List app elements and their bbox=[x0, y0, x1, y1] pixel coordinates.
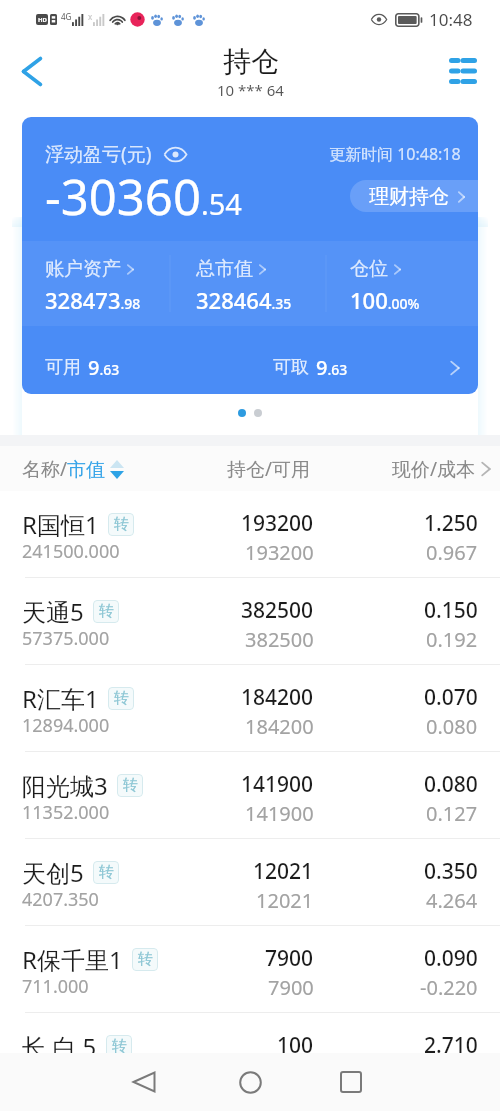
staticText: 10 *** 64 bbox=[217, 80, 284, 100]
button[interactable]: R汇车1 bbox=[0, 665, 500, 752]
staticText: 可取 bbox=[273, 356, 309, 379]
staticText: 阳光城3 bbox=[22, 769, 108, 802]
staticText: HD bbox=[38, 16, 47, 24]
staticText: 0.080 bbox=[424, 770, 478, 799]
staticText: 0.070 bbox=[424, 683, 478, 712]
staticText: 1.250 bbox=[424, 509, 478, 538]
staticText: 12021 bbox=[253, 857, 314, 886]
staticText: 328473.98 bbox=[45, 285, 141, 315]
staticText: 0.150 bbox=[424, 596, 478, 625]
staticText: 转 bbox=[112, 1037, 127, 1056]
staticText: 382500 bbox=[245, 626, 314, 653]
staticText: 仓位 bbox=[350, 257, 388, 281]
staticText: 转 bbox=[114, 689, 129, 708]
button[interactable]: Back bbox=[109, 1053, 179, 1111]
staticText: 理财持仓 bbox=[369, 184, 449, 209]
button[interactable]: 长 白 5 bbox=[0, 1013, 500, 1100]
staticText: 57375.000 bbox=[22, 626, 110, 651]
staticText: 0.090 bbox=[424, 944, 478, 973]
staticText: 天创5 bbox=[22, 856, 84, 889]
staticText: 天通5 bbox=[22, 595, 84, 628]
button[interactable]: R国恒1 bbox=[0, 491, 500, 578]
staticText: 184200 bbox=[241, 683, 314, 712]
staticText: 12894.000 bbox=[22, 713, 110, 738]
staticText: 转 bbox=[99, 602, 114, 621]
staticText: 11352.000 bbox=[22, 800, 110, 825]
staticText: 4G bbox=[61, 11, 72, 22]
staticText: 382500 bbox=[241, 596, 314, 625]
staticText: 100 bbox=[277, 1031, 314, 1060]
button[interactable]: Home bbox=[215, 1053, 285, 1111]
button[interactable]: 仓位 bbox=[350, 241, 420, 315]
staticText: R保千里1 bbox=[22, 943, 123, 976]
staticText: 193200 bbox=[241, 509, 314, 538]
staticText: 现价/成本 bbox=[392, 456, 476, 482]
button[interactable]: R保千里1 bbox=[0, 926, 500, 1013]
button[interactable]: 可用 bbox=[22, 341, 478, 394]
button[interactable]: 名称/市值 bbox=[22, 456, 124, 482]
staticText: 长 白 5 bbox=[22, 1030, 97, 1063]
button[interactable]: Back bbox=[1, 35, 63, 107]
button[interactable]: 账户资产 bbox=[45, 241, 141, 315]
staticText: 0.350 bbox=[424, 857, 478, 886]
staticText: 193200 bbox=[245, 539, 314, 566]
staticText: 328464.35 bbox=[196, 285, 292, 315]
staticText: 0.192 bbox=[426, 626, 478, 653]
staticText: R汇车1 bbox=[22, 682, 99, 715]
staticText: x bbox=[88, 11, 93, 22]
staticText: 0.967 bbox=[426, 539, 478, 566]
button[interactable]: List view bbox=[432, 34, 494, 106]
staticText: 141900 bbox=[245, 800, 314, 827]
staticText: 141900 bbox=[241, 770, 314, 799]
staticText: 100.00% bbox=[350, 285, 420, 315]
staticText: 4.264 bbox=[426, 887, 478, 914]
staticText: 10:48 bbox=[429, 8, 473, 31]
staticText: 可用 bbox=[45, 356, 81, 379]
staticText: 总市值 bbox=[196, 257, 253, 281]
staticText: 0.127 bbox=[426, 800, 478, 827]
staticText: 9.63 bbox=[316, 354, 348, 381]
staticText: 241500.000 bbox=[22, 539, 120, 564]
staticText: 账户资产 bbox=[45, 257, 121, 281]
staticText: 持仓 bbox=[223, 44, 279, 79]
staticText: 浮动盈亏(元) bbox=[45, 141, 152, 167]
button[interactable]: 现价/成本 bbox=[392, 456, 491, 482]
button[interactable]: 总市值 bbox=[196, 241, 292, 315]
button[interactable]: 阳光城3 bbox=[0, 752, 500, 839]
staticText: 0.080 bbox=[426, 713, 478, 740]
staticText: 12021 bbox=[256, 887, 314, 914]
staticText: 转 bbox=[99, 863, 114, 882]
staticText: 转 bbox=[123, 776, 138, 795]
staticText: R国恒1 bbox=[22, 508, 99, 541]
staticText: -30360.54 bbox=[45, 163, 242, 230]
staticText: 2.710 bbox=[424, 1031, 478, 1060]
staticText: 转 bbox=[138, 950, 153, 969]
staticText: 转 bbox=[114, 515, 129, 534]
button[interactable]: 理财持仓 bbox=[350, 180, 478, 212]
staticText: 711.000 bbox=[22, 974, 89, 999]
staticText: 7900 bbox=[268, 974, 314, 1001]
staticText: 更新时间 10:48:18 bbox=[329, 143, 461, 165]
staticText: -0.220 bbox=[420, 974, 478, 1001]
button[interactable]: Recent apps bbox=[316, 1053, 386, 1111]
staticText: 184200 bbox=[245, 713, 314, 740]
staticText: 9.63 bbox=[88, 354, 120, 381]
staticText: 名称/市值 bbox=[22, 456, 106, 482]
button[interactable]: 天创5 bbox=[0, 839, 500, 926]
staticText: 持仓/可用 bbox=[227, 456, 311, 482]
staticText: 4207.350 bbox=[22, 887, 99, 912]
button[interactable]: 天通5 bbox=[0, 578, 500, 665]
staticText: 7900 bbox=[265, 944, 314, 973]
